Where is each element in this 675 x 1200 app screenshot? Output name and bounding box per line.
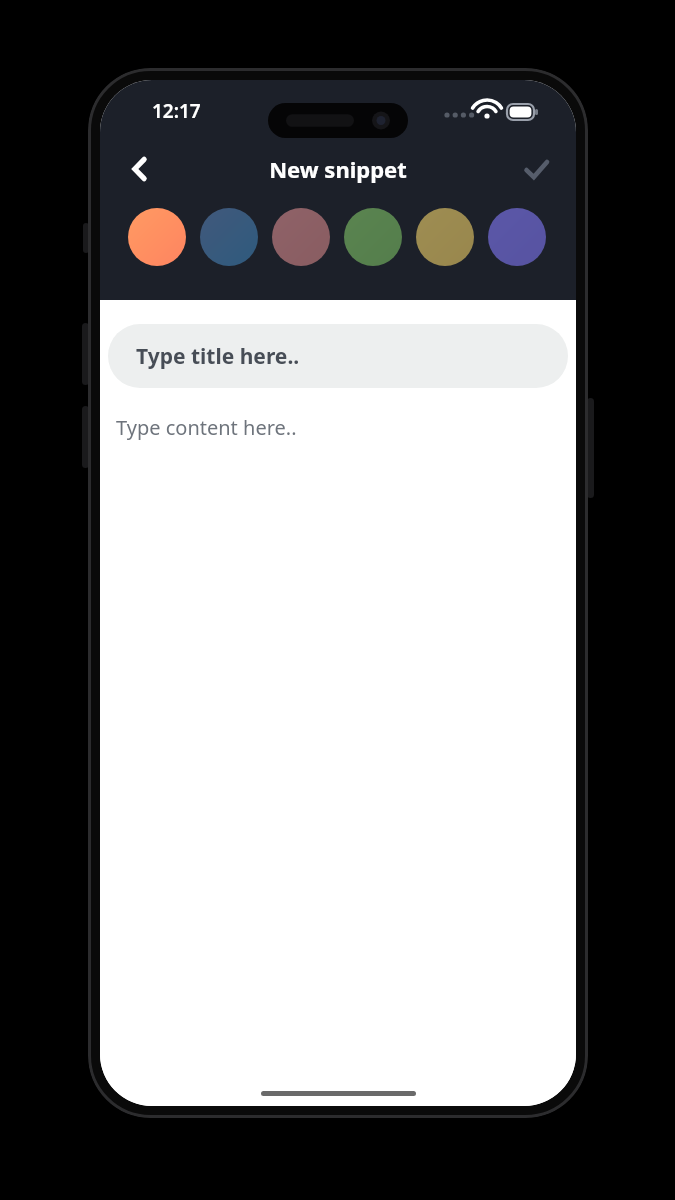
button[interactable]: Colour option	[128, 208, 186, 266]
button[interactable]: Colour option	[200, 208, 258, 266]
button[interactable]: Colour option	[272, 208, 330, 266]
button[interactable]: Colour option	[344, 208, 402, 266]
button[interactable]: Back	[114, 143, 166, 195]
button[interactable]: Type content here..	[100, 406, 576, 1080]
button[interactable]: Type title here..	[108, 324, 568, 388]
button[interactable]: Colour option	[416, 208, 474, 266]
staticText: Type title here..	[136, 342, 300, 371]
button[interactable]: Colour option	[488, 208, 546, 266]
staticText: Type content here..	[116, 414, 297, 441]
staticText: New snippet	[269, 154, 407, 184]
staticText: 12:17	[152, 98, 201, 124]
button[interactable]: Save snippet	[510, 143, 562, 195]
